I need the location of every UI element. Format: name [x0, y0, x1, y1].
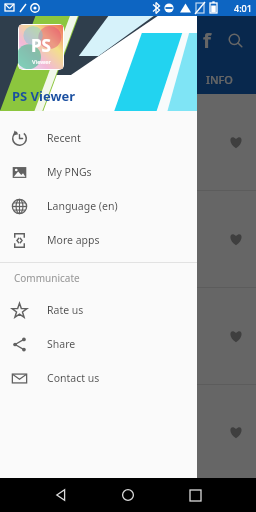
- staticText: file (2).ps: [88, 240, 130, 254]
- staticText: More apps: [47, 233, 100, 247]
- button[interactable]: Search: [222, 27, 248, 53]
- staticText: PS: [31, 34, 51, 57]
- button[interactable]: Home: [115, 482, 141, 508]
- staticText: Communicate: [14, 271, 80, 285]
- staticText: Viewer: [32, 58, 51, 66]
- button[interactable]: Back: [48, 482, 74, 508]
- staticText: Contact us: [47, 371, 100, 385]
- staticText: INFO: [206, 72, 233, 87]
- staticText: Share: [47, 337, 76, 351]
- staticText: Rate us: [47, 303, 84, 317]
- button[interactable]: My PNGs: [0, 155, 197, 189]
- button[interactable]: [0, 16, 256, 478]
- staticText: f: [203, 27, 211, 54]
- button[interactable]: More apps: [0, 223, 197, 257]
- button[interactable]: Favorite: [224, 227, 248, 251]
- button[interactable]: Favorite: [224, 324, 248, 348]
- button[interactable]: Recents: [182, 482, 208, 508]
- button[interactable]: Document: [0, 191, 256, 287]
- button[interactable]: Language (en): [0, 189, 197, 223]
- staticText: PS Viewer: [12, 87, 76, 105]
- button[interactable]: Document: [0, 385, 256, 478]
- button[interactable]: Share: [0, 327, 197, 361]
- staticText: 4:01: [234, 2, 252, 14]
- button[interactable]: Document: [0, 288, 256, 384]
- button[interactable]: Favorite: [224, 130, 248, 154]
- button[interactable]: Recent: [0, 121, 197, 155]
- button[interactable]: Favorite: [224, 420, 248, 444]
- button[interactable]: Document: [0, 94, 256, 190]
- button[interactable]: Rate us: [0, 293, 197, 327]
- staticText: Recent: [47, 131, 81, 145]
- staticText: Language (en): [47, 199, 118, 213]
- staticText: My PNGs: [47, 165, 92, 179]
- button[interactable]: Contact us: [0, 361, 197, 395]
